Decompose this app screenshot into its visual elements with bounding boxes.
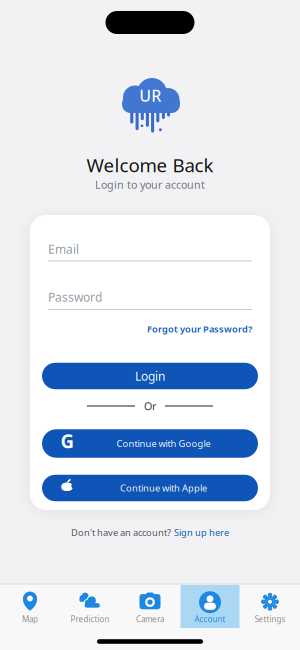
staticText: Continue with Google	[116, 437, 210, 450]
staticText: Welcome Back	[86, 153, 213, 177]
staticText: Settings	[254, 614, 285, 624]
staticText: G	[60, 429, 74, 453]
staticText: Don't have an account?	[71, 526, 171, 539]
button[interactable]: Login	[42, 363, 258, 389]
staticText: Continue with Apple	[120, 482, 207, 494]
button[interactable]: Camera	[120, 585, 180, 631]
button[interactable]: Prediction	[60, 585, 120, 631]
button[interactable]: Map	[0, 585, 60, 631]
button[interactable]: Sign up here	[174, 526, 229, 539]
staticText: Account	[194, 614, 225, 624]
staticText: UR	[139, 85, 161, 106]
button[interactable]: G	[42, 429, 258, 458]
staticText: Forgot your Password?	[147, 323, 252, 335]
button[interactable]: Forgot your Password?	[147, 323, 252, 335]
button[interactable]: Continue with Apple	[42, 475, 258, 501]
staticText: Sign up here	[174, 526, 229, 539]
staticText: Map	[22, 614, 38, 624]
button[interactable]: Settings	[240, 585, 300, 631]
staticText: Camera	[136, 614, 164, 624]
staticText: Prediction	[70, 614, 109, 624]
button[interactable]: Account	[180, 585, 240, 631]
staticText: Login	[135, 368, 165, 384]
staticText: Password	[48, 289, 102, 305]
staticText: Or	[144, 399, 156, 413]
staticText: Email	[48, 241, 79, 257]
staticText: Login to your account	[95, 177, 205, 192]
